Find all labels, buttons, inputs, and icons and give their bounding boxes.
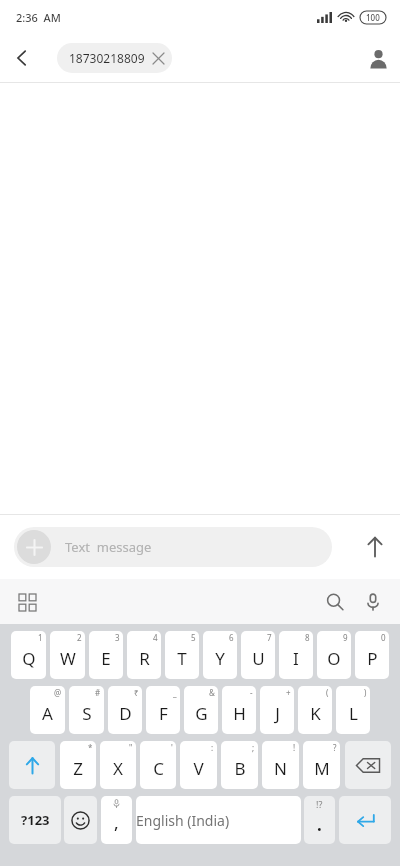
- button[interactable]: 1: [11, 631, 46, 679]
- button[interactable]: 18730218809: [57, 43, 172, 73]
- staticText: &: [209, 687, 215, 698]
- staticText: 100: [366, 12, 380, 23]
- staticText: N: [274, 757, 287, 780]
- staticText: :: [211, 742, 214, 753]
- button[interactable]: (: [298, 686, 332, 734]
- staticText: 1: [38, 632, 43, 643]
- button[interactable]: ₹: [108, 686, 142, 734]
- staticText: 2:36 AM: [16, 10, 61, 25]
- button[interactable]: 2: [50, 631, 85, 679]
- staticText: !: [293, 742, 296, 753]
- button[interactable]: +: [260, 686, 294, 734]
- staticText: T: [177, 647, 187, 670]
- staticText: !?: [316, 798, 323, 810]
- button[interactable]: ?: [303, 741, 340, 789]
- staticText: 3: [115, 632, 120, 643]
- staticText: E: [101, 647, 111, 670]
- staticText: ): [364, 687, 367, 698]
- staticText: ?123: [21, 811, 50, 829]
- button[interactable]: 9: [317, 631, 351, 679]
- button[interactable]: 8: [279, 631, 313, 679]
- button[interactable]: 7: [241, 631, 275, 679]
- staticText: ?: [333, 742, 337, 753]
- staticText: 5: [191, 632, 196, 643]
- staticText: Z: [73, 757, 83, 780]
- button[interactable]: Enter: [339, 796, 391, 844]
- button[interactable]: #: [69, 686, 104, 734]
- staticText: -: [250, 687, 253, 698]
- button[interactable]: ): [336, 686, 370, 734]
- staticText: 7: [267, 632, 272, 643]
- button[interactable]: ,: [101, 796, 132, 844]
- staticText: U: [252, 647, 265, 670]
- button[interactable]: _: [146, 686, 180, 734]
- button[interactable]: 4: [127, 631, 161, 679]
- button[interactable]: Shift: [9, 741, 55, 789]
- staticText: X: [113, 757, 123, 780]
- button[interactable]: Add attachment: [17, 530, 51, 564]
- staticText: L: [349, 702, 358, 725]
- staticText: Y: [215, 647, 225, 670]
- staticText: G: [195, 702, 208, 725]
- staticText: 9: [343, 632, 348, 643]
- button[interactable]: 0: [355, 631, 389, 679]
- staticText: I: [293, 647, 299, 670]
- staticText: @: [54, 687, 62, 698]
- staticText: W: [60, 647, 76, 670]
- staticText: K: [310, 702, 321, 725]
- staticText: 2: [77, 632, 82, 643]
- button[interactable]: Voice input: [354, 583, 392, 621]
- button[interactable]: Contacts: [356, 36, 400, 80]
- staticText: *: [88, 742, 93, 753]
- button[interactable]: Send: [350, 522, 400, 572]
- staticText: ,: [114, 811, 119, 834]
- button[interactable]: !: [262, 741, 299, 789]
- button[interactable]: ?123: [9, 796, 61, 844]
- staticText: R: [139, 647, 150, 670]
- staticText: ;: [252, 742, 255, 753]
- staticText: +: [286, 687, 291, 698]
- staticText: 6: [229, 632, 234, 643]
- button[interactable]: 6: [203, 631, 237, 679]
- staticText: F: [159, 702, 168, 725]
- button[interactable]: :: [180, 741, 217, 789]
- staticText: Q: [22, 647, 36, 670]
- button[interactable]: Add attachment: [14, 527, 332, 567]
- staticText: A: [42, 702, 53, 725]
- staticText: C: [153, 757, 164, 780]
- staticText: ': [171, 742, 173, 753]
- button[interactable]: English (India): [136, 796, 301, 844]
- staticText: J: [275, 702, 280, 725]
- button[interactable]: *: [60, 741, 96, 789]
- button[interactable]: Backspace: [345, 741, 391, 789]
- button[interactable]: Search: [316, 583, 354, 621]
- button[interactable]: Emoji: [64, 796, 97, 844]
- staticText: ₹: [134, 687, 139, 698]
- button[interactable]: 3: [89, 631, 123, 679]
- button[interactable]: ': [140, 741, 176, 789]
- button[interactable]: Back: [0, 36, 44, 80]
- staticText: H: [233, 702, 246, 725]
- staticText: D: [119, 702, 132, 725]
- button[interactable]: 5: [165, 631, 199, 679]
- button[interactable]: !?: [304, 796, 335, 844]
- staticText: #: [95, 687, 101, 698]
- staticText: English (India): [136, 811, 301, 830]
- button[interactable]: ;: [221, 741, 258, 789]
- staticText: M: [314, 757, 330, 780]
- button[interactable]: ": [100, 741, 136, 789]
- staticText: (: [326, 687, 329, 698]
- staticText: .: [317, 813, 322, 836]
- button[interactable]: @: [30, 686, 65, 734]
- staticText: V: [193, 757, 204, 780]
- button[interactable]: &: [184, 686, 218, 734]
- staticText: 0: [381, 632, 386, 643]
- staticText: S: [82, 702, 92, 725]
- staticText: P: [367, 647, 378, 670]
- staticText: ": [129, 742, 133, 753]
- staticText: O: [327, 647, 341, 670]
- button[interactable]: -: [222, 686, 256, 734]
- staticText: _: [173, 687, 177, 698]
- button[interactable]: Keyboard menu: [8, 583, 46, 621]
- staticText: Text message: [65, 538, 152, 556]
